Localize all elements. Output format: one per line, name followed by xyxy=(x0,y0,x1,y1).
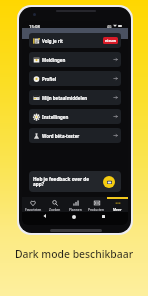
staticText: Heb je feedback over de app? xyxy=(33,176,103,188)
staticText: Dark mode beschikbaar xyxy=(0,247,148,261)
staticText: 4G xyxy=(107,24,112,28)
button[interactable]: Meer xyxy=(107,197,128,212)
button[interactable]: Back xyxy=(43,214,47,218)
other: Producten xyxy=(94,200,100,206)
staticText: Plannen xyxy=(69,207,82,211)
button[interactable]: Producten xyxy=(86,197,107,212)
staticText: Profiel xyxy=(42,76,57,82)
button[interactable]: Heb je feedback over de app? xyxy=(29,171,121,192)
staticText: Producten xyxy=(88,207,105,211)
button[interactable]: Volg je rit xyxy=(29,33,121,48)
other: Open Profiel xyxy=(113,76,118,81)
other: Open Instellingen xyxy=(113,114,118,119)
staticText: Zoeken xyxy=(49,207,61,211)
staticText: nieuw xyxy=(105,38,116,43)
staticText: 15:08 xyxy=(29,23,40,29)
staticText: Word bèta-tester xyxy=(42,133,80,139)
other: Zoeken xyxy=(52,200,58,206)
other: Plannen xyxy=(73,200,79,206)
staticText: Instellingen xyxy=(42,114,69,120)
staticText: Favorieten xyxy=(25,207,42,211)
other: Feedback xyxy=(107,180,112,185)
button[interactable]: Profiel xyxy=(29,71,121,86)
button[interactable]: Plannen xyxy=(65,197,86,212)
staticText: Mijn betaalmiddelen xyxy=(42,95,88,101)
button[interactable]: Mijn betaalmiddelen xyxy=(29,90,121,105)
other: Open Meldingen xyxy=(113,57,118,62)
other: Open Word bèta-tester xyxy=(113,133,118,138)
other: Open Mijn betaalmiddelen xyxy=(113,95,118,100)
button[interactable]: Recent apps xyxy=(102,215,105,218)
button[interactable]: Home xyxy=(72,215,76,219)
staticText: Meldingen xyxy=(42,57,66,63)
button[interactable]: Zoeken xyxy=(44,197,65,212)
staticText: Meer xyxy=(113,207,122,211)
button[interactable]: Favorieten xyxy=(22,197,44,212)
button[interactable]: Instellingen xyxy=(29,109,121,124)
button[interactable]: Word bèta-tester xyxy=(29,128,121,143)
other: Meer xyxy=(115,200,121,206)
button[interactable]: Meldingen xyxy=(29,52,121,67)
staticText: Volg je rit xyxy=(42,38,63,44)
other: Favorieten xyxy=(30,200,36,206)
